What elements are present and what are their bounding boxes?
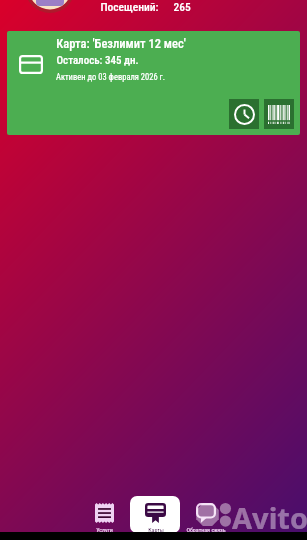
staticText: 265 [173,0,191,13]
button[interactable]: Карты [130,496,180,533]
staticText: Осталось: 345 дн. [56,54,139,67]
button[interactable]: Обратная связь [181,496,231,533]
button[interactable]: История посещений [229,99,259,129]
staticText: Посещений: [100,0,159,13]
staticText: Услуги [96,526,113,533]
staticText: Активен до 03 февраля 2026 г. [56,72,165,82]
button[interactable]: Штрихкод [264,99,294,129]
button[interactable]: Услуги [79,496,129,533]
staticText: Карта: 'Безлимит 12 мес' [56,36,186,51]
staticText: Обратная связь [186,526,226,533]
button[interactable]: Карта: 'Безлимит 12 мес' [7,31,300,135]
staticText: Карты [148,526,164,533]
staticText: Avito [232,498,307,537]
